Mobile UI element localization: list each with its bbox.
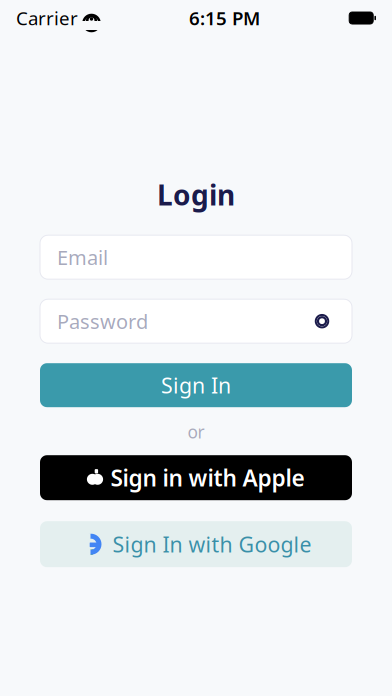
button[interactable]: Sign In	[40, 363, 352, 407]
staticText: Password	[57, 308, 148, 334]
staticText: or	[187, 420, 204, 443]
staticText: 6:15 PM	[189, 6, 260, 30]
staticText: Email	[57, 244, 108, 270]
button[interactable]: Sign In with Google	[40, 521, 352, 567]
button[interactable]: Sign in with Apple	[40, 455, 352, 500]
staticText: Sign In	[161, 371, 231, 399]
staticText: Carrier	[16, 6, 78, 30]
staticText: Sign in with Apple	[110, 463, 304, 493]
button[interactable]: Show password	[309, 308, 335, 334]
staticText: Login	[157, 176, 235, 213]
staticText: Sign In with Google	[112, 530, 311, 558]
